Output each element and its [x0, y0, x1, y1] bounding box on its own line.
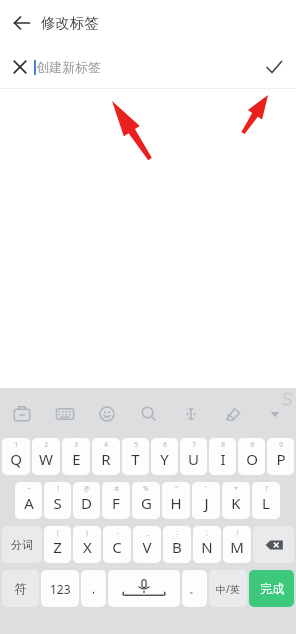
staticText: _ — [146, 528, 149, 537]
button[interactable]: 搜索 — [128, 391, 170, 436]
button[interactable]: 皮肤 — [212, 391, 254, 436]
button[interactable]: @ — [73, 482, 100, 519]
button[interactable]: _ — [133, 526, 161, 563]
staticText: 5 — [134, 440, 138, 449]
button[interactable]: 更多 — [254, 391, 296, 436]
staticText: Y — [160, 449, 169, 469]
staticText: U — [188, 449, 199, 469]
button[interactable]: 6 — [151, 438, 178, 475]
button[interactable]: 1 — [2, 438, 30, 475]
staticText: 分词 — [11, 538, 33, 552]
staticText: K — [231, 493, 241, 513]
staticText: - — [116, 528, 119, 537]
staticText: % — [143, 484, 149, 493]
button[interactable]: 返回 — [4, 3, 40, 43]
button[interactable]: 分词 — [2, 526, 42, 563]
staticText: D — [81, 493, 92, 513]
button[interactable]: 完成 — [249, 570, 294, 607]
button[interactable]: ; — [193, 526, 221, 563]
staticText: @ — [84, 484, 90, 493]
button[interactable]: 键盘 — [43, 391, 86, 436]
staticText: O — [246, 449, 258, 469]
staticText: G — [141, 493, 152, 513]
staticText: N — [201, 537, 213, 557]
button[interactable]: / — [223, 526, 251, 563]
button[interactable]: : — [163, 526, 191, 563]
button[interactable]: ( — [44, 526, 71, 563]
button[interactable]: 4 — [92, 438, 120, 475]
button[interactable]: 3 — [62, 438, 90, 475]
button[interactable]: 9 — [238, 438, 265, 475]
staticText: A — [24, 493, 34, 513]
staticText: P — [276, 449, 286, 469]
staticText: 1 — [14, 440, 18, 449]
button[interactable]: 123 — [41, 570, 79, 607]
staticText: " — [175, 484, 178, 493]
staticText: ; — [206, 528, 208, 537]
staticText: 创建新标签 — [36, 59, 101, 75]
staticText: 中/英 — [216, 582, 240, 596]
button[interactable]: * — [222, 482, 250, 519]
staticText: ) — [86, 528, 88, 537]
button[interactable]: 中/英 — [209, 570, 247, 607]
staticText: * — [234, 484, 238, 493]
button[interactable]: 0 — [267, 438, 294, 475]
button[interactable]: 剪贴板 — [0, 391, 43, 436]
button[interactable]: ， — [81, 570, 106, 607]
button[interactable]: % — [132, 482, 160, 519]
staticText: 9 — [250, 440, 254, 449]
staticText: ? — [265, 484, 268, 493]
button[interactable]: 8 — [209, 438, 236, 475]
staticText: # — [114, 484, 119, 493]
staticText: R — [101, 449, 111, 469]
staticText: / — [236, 528, 239, 537]
staticText: ! — [57, 484, 59, 493]
staticText: Q — [10, 449, 22, 469]
button[interactable]: 删除 — [253, 526, 294, 563]
staticText: 0 — [279, 440, 283, 449]
staticText: L — [262, 493, 270, 513]
staticText: T — [131, 449, 140, 469]
button[interactable]: ' — [192, 482, 220, 519]
staticText: 8 — [221, 440, 225, 449]
button[interactable]: ~ — [15, 482, 42, 519]
staticText: I — [220, 449, 226, 469]
staticText: H — [170, 493, 182, 513]
button[interactable]: ) — [73, 526, 101, 563]
staticText: 4 — [104, 440, 108, 449]
button[interactable]: 2 — [32, 438, 60, 475]
button[interactable]: # — [102, 482, 130, 519]
button[interactable]: 表情 — [86, 391, 128, 436]
staticText: 3 — [74, 440, 78, 449]
staticText: 符 — [15, 581, 27, 596]
button[interactable]: ! — [44, 482, 71, 519]
button[interactable]: 7 — [180, 438, 207, 475]
staticText: ， — [88, 582, 99, 596]
staticText: ~ — [27, 484, 31, 493]
staticText: ' — [205, 484, 207, 493]
staticText: B — [172, 537, 182, 557]
staticText: ( — [57, 528, 59, 537]
staticText: V — [142, 537, 152, 557]
staticText: S — [53, 493, 62, 513]
staticText: 7 — [192, 440, 196, 449]
staticText: 修改标签 — [41, 14, 99, 32]
button[interactable]: 5 — [122, 438, 149, 475]
button[interactable]: 清除 — [2, 48, 38, 86]
button[interactable]: 光标 — [170, 391, 212, 436]
staticText: E — [72, 449, 81, 469]
staticText: 6 — [163, 440, 167, 449]
button[interactable]: 确认 — [256, 47, 292, 87]
button[interactable]: 符 — [2, 570, 39, 607]
staticText: Z — [53, 537, 62, 557]
button[interactable]: 空格 — [108, 570, 180, 607]
staticText: M — [230, 537, 244, 557]
staticText: F — [112, 493, 120, 513]
button[interactable]: 。 — [182, 570, 207, 607]
staticText: X — [83, 537, 92, 557]
staticText: 2 — [44, 440, 48, 449]
button[interactable]: - — [103, 526, 131, 563]
staticText: C — [112, 537, 122, 557]
button[interactable]: " — [162, 482, 190, 519]
button[interactable]: ? — [252, 482, 280, 519]
